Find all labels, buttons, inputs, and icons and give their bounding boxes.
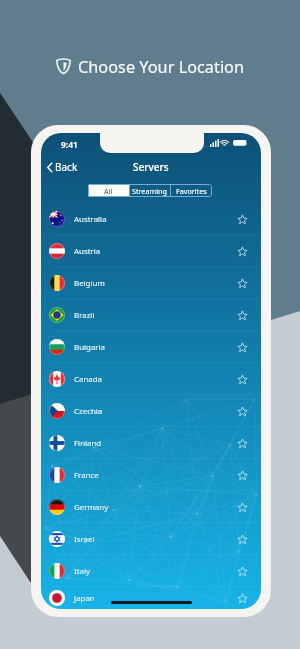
button[interactable]: Australia	[41, 203, 261, 235]
button[interactable]: Austria	[41, 235, 261, 267]
button[interactable]: Streaming	[129, 184, 170, 197]
other: Add to favorites	[237, 502, 248, 513]
staticText: Back	[55, 160, 78, 174]
staticText: Germany	[74, 502, 109, 513]
other: Add to favorites	[237, 342, 248, 353]
other: Add to favorites	[237, 470, 248, 481]
button[interactable]: France	[41, 459, 261, 491]
button[interactable]: Bulgaria	[41, 331, 261, 363]
other: Add to favorites	[237, 593, 248, 604]
button[interactable]: Belgium	[41, 267, 261, 299]
other: Add to favorites	[237, 406, 248, 417]
button[interactable]: Japan	[41, 587, 261, 609]
button[interactable]: Israel	[41, 523, 261, 555]
other: Add to favorites	[237, 534, 248, 545]
staticText: Choose Your Location	[78, 56, 245, 78]
staticText: Finland	[74, 438, 102, 449]
button[interactable]: Brazil	[41, 299, 261, 331]
other: Add to favorites	[237, 374, 248, 385]
other: Add to favorites	[237, 438, 248, 449]
staticText: 9:41	[61, 139, 78, 151]
staticText: Favorites	[176, 186, 207, 196]
staticText: France	[74, 470, 99, 481]
other: Add to favorites	[237, 278, 248, 289]
button[interactable]: Czechia	[41, 395, 261, 427]
staticText: Austria	[74, 246, 101, 257]
button[interactable]: Favorites	[170, 184, 212, 197]
other: Add to favorites	[237, 310, 248, 321]
other: Add to favorites	[237, 566, 248, 577]
button[interactable]: Germany	[41, 491, 261, 523]
button[interactable]: All	[88, 184, 129, 197]
staticText: Italy	[74, 566, 91, 577]
staticText: Servers	[133, 160, 169, 174]
staticText: Canada	[74, 374, 102, 385]
other: Add to favorites	[237, 214, 248, 225]
staticText: Belgium	[74, 278, 105, 289]
button[interactable]: Canada	[41, 363, 261, 395]
other: Add to favorites	[237, 246, 248, 257]
staticText: Australia	[74, 214, 107, 225]
button[interactable]: Finland	[41, 427, 261, 459]
staticText: Streaming	[132, 186, 167, 196]
staticText: Brazil	[74, 310, 95, 321]
button[interactable]: Back	[41, 158, 84, 176]
staticText: Czechia	[74, 406, 103, 417]
other: Back	[47, 162, 53, 173]
staticText: Japan	[74, 593, 95, 604]
staticText: Israel	[74, 534, 95, 545]
staticText: All	[104, 186, 113, 196]
button[interactable]: Italy	[41, 555, 261, 587]
staticText: Bulgaria	[74, 342, 106, 353]
